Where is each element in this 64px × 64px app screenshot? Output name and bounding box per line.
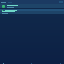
button[interactable]	[0, 11, 64, 14]
other: Status indicator	[2, 5, 5, 8]
button[interactable]: App bar	[0, 0, 64, 4]
button[interactable]	[0, 9, 64, 11]
button[interactable]: Status indicator	[0, 4, 64, 8]
button[interactable]: Bottom navigation	[0, 62, 64, 64]
